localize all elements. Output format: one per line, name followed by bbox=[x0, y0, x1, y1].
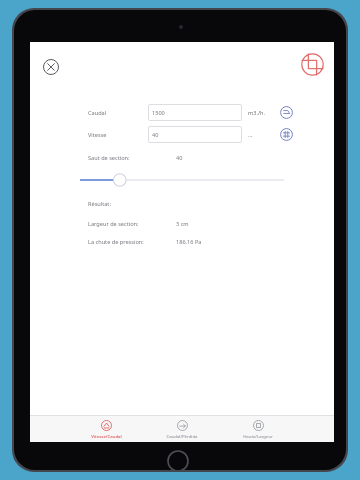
staticText: m3./h. bbox=[248, 109, 265, 117]
staticText: ... bbox=[248, 131, 253, 139]
staticText: Saut de section: bbox=[88, 154, 130, 162]
staticText: 40 bbox=[176, 154, 183, 162]
button[interactable]: Section shape bbox=[299, 51, 326, 78]
staticText: Vitesse/Caudal bbox=[91, 433, 122, 439]
button[interactable]: Caudal/Pérdida bbox=[152, 420, 212, 439]
button[interactable]: Close bbox=[38, 54, 64, 80]
button[interactable]: Flow units bbox=[280, 106, 293, 119]
button[interactable]: 40 bbox=[148, 126, 242, 143]
button[interactable]: Section step slider bbox=[74, 170, 290, 190]
staticText: 3 cm bbox=[176, 220, 189, 228]
staticText: Caudal/Pérdida bbox=[166, 433, 198, 439]
staticText: La chute de pression: bbox=[88, 238, 144, 246]
staticText: Largeur de section: bbox=[88, 220, 139, 228]
button[interactable]: Vitesse/Caudal bbox=[76, 420, 136, 439]
staticText: Vitesse bbox=[88, 131, 107, 139]
button[interactable]: 1500 bbox=[148, 104, 242, 121]
staticText: Caudal bbox=[88, 109, 107, 117]
staticText: Haute/Largeur bbox=[243, 433, 273, 439]
staticText: 40 bbox=[152, 131, 159, 139]
staticText: 1500 bbox=[152, 109, 165, 117]
button[interactable]: Haute/Largeur bbox=[228, 420, 288, 439]
staticText: Résultat: bbox=[88, 200, 111, 208]
button[interactable]: Speed units bbox=[280, 128, 293, 141]
staticText: 186.16 Pa bbox=[176, 238, 202, 246]
